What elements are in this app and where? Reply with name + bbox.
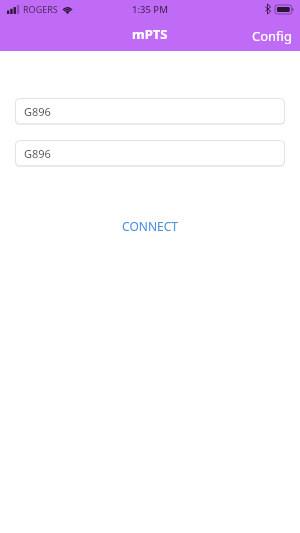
button[interactable]: Config (242, 23, 300, 51)
button[interactable]: G896 (15, 140, 285, 167)
staticText: mPTS (132, 25, 168, 43)
staticText: G896 (24, 104, 51, 119)
button[interactable]: CONNECT (0, 211, 300, 241)
button[interactable]: G896 (15, 98, 285, 125)
staticText: G896 (24, 146, 51, 161)
staticText: 1:35 PM (132, 3, 168, 16)
staticText: Config (252, 27, 292, 45)
staticText: CONNECT (122, 218, 178, 234)
staticText: ROGERS (23, 3, 58, 15)
